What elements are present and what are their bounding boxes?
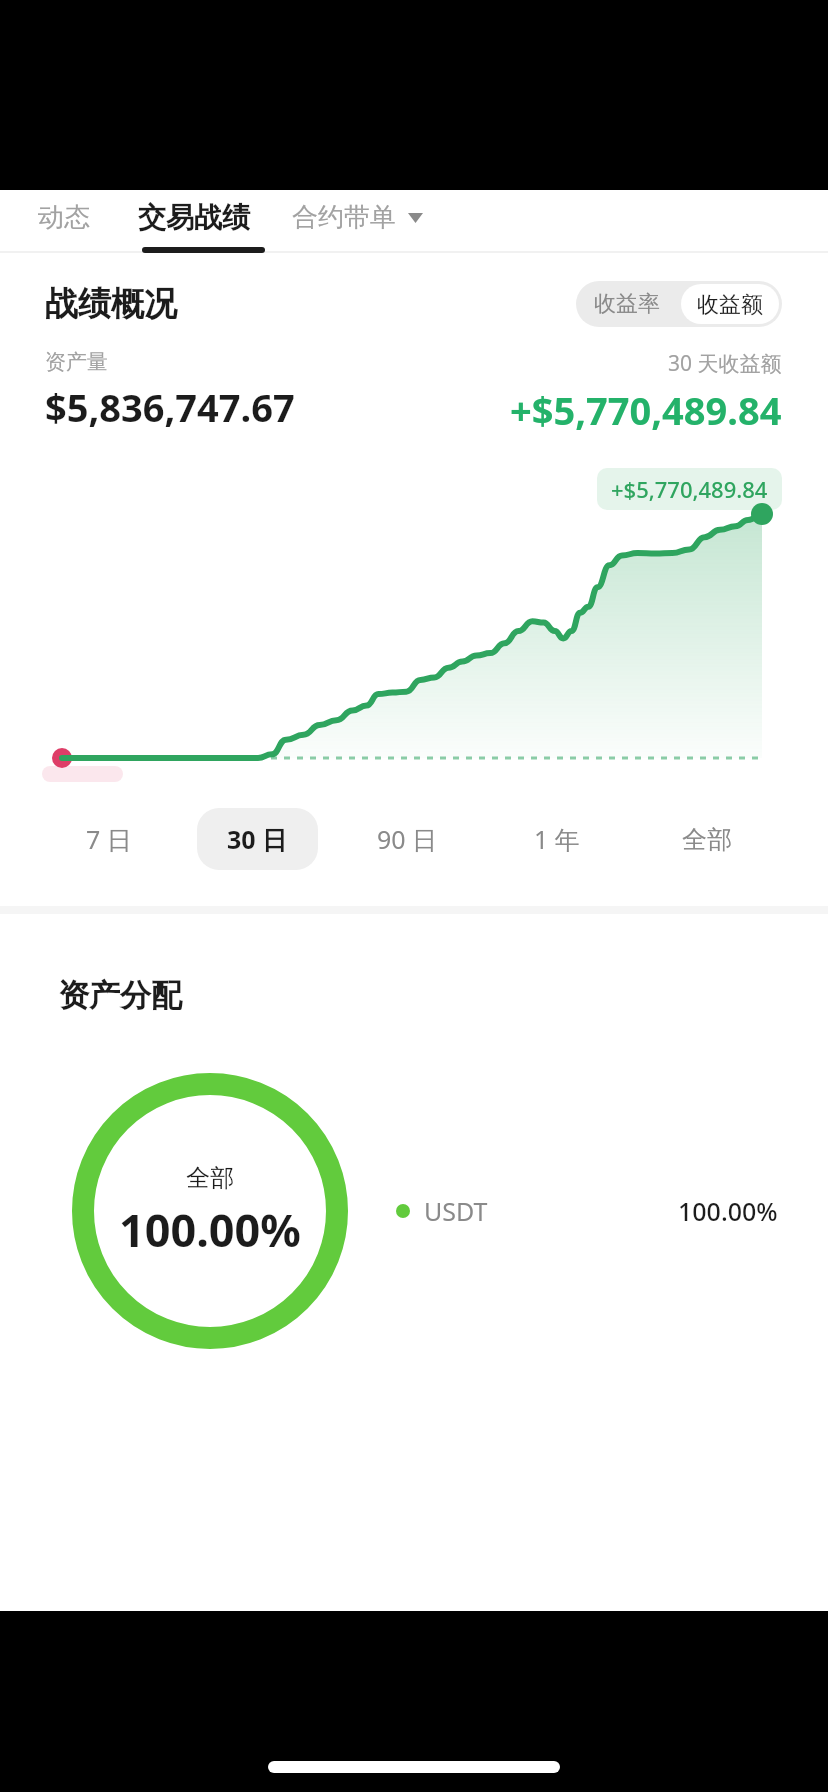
button[interactable]: 1 年 — [504, 808, 610, 870]
button[interactable]: 合约带单 — [284, 195, 431, 240]
staticText: 100.00% — [119, 1199, 301, 1260]
staticText: 100.00% — [678, 1194, 778, 1228]
staticText: +$5,770,489.84 — [611, 474, 768, 504]
staticText: 全部 — [682, 824, 732, 855]
staticText: 收益额 — [697, 291, 763, 317]
button[interactable]: 收益率 — [576, 282, 678, 326]
button[interactable]: 30 日 — [197, 808, 318, 870]
staticText: 资产量 — [45, 349, 108, 375]
staticText: 30 天收益额 — [668, 349, 782, 378]
button[interactable]: 7 日 — [56, 808, 162, 870]
staticText: 7 日 — [86, 822, 132, 856]
staticText: $5,836,747.67 — [45, 381, 295, 433]
button[interactable]: 全部 — [652, 810, 762, 869]
staticText: 90 日 — [377, 822, 438, 856]
staticText: 交易战绩 — [138, 200, 250, 235]
staticText: 动态 — [38, 201, 90, 234]
button[interactable]: 交易战绩 — [130, 194, 258, 241]
staticText: 战绩概况 — [45, 283, 177, 325]
staticText: 资产分配 — [58, 976, 182, 1015]
staticText: 收益率 — [594, 290, 660, 318]
button[interactable]: 动态 — [30, 195, 98, 240]
button[interactable]: 收益额 — [681, 284, 779, 324]
staticText: 全部 — [186, 1163, 234, 1193]
staticText: USDT — [424, 1194, 488, 1228]
staticText: +$5,770,489.84 — [510, 384, 782, 436]
button[interactable]: 90 日 — [347, 808, 468, 870]
staticText: 1 年 — [534, 822, 580, 856]
staticText: 30 日 — [227, 822, 288, 856]
staticText: 合约带单 — [292, 201, 396, 234]
button[interactable]: USDT — [396, 1194, 778, 1228]
